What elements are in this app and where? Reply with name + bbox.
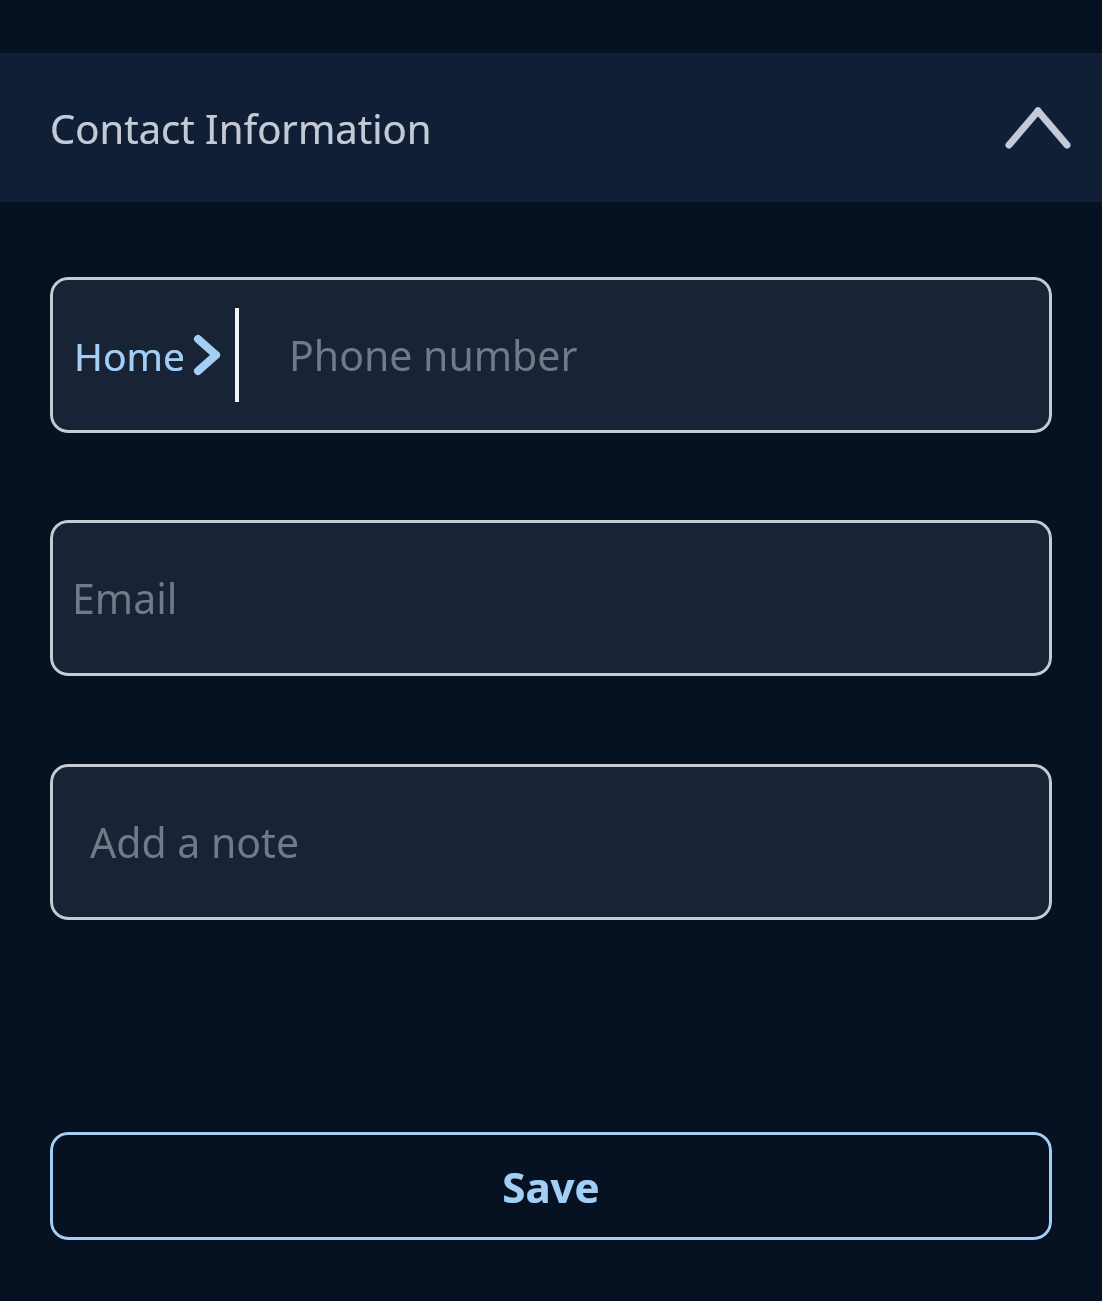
button[interactable]: Add a note [50,764,1052,920]
staticText: Home [74,329,185,382]
button[interactable]: Home [50,277,235,433]
button[interactable]: Contact Information [0,53,1102,202]
button[interactable]: Home [50,277,1052,433]
staticText: Contact Information [50,101,432,155]
button[interactable]: Email [50,520,1052,676]
button[interactable]: Collapse section [1006,96,1070,160]
staticText: Email [72,570,178,626]
staticText: Add a note [90,814,300,870]
button[interactable]: Phone number [239,277,1052,433]
staticText: Phone number [289,327,578,383]
button[interactable]: Save [50,1132,1052,1240]
staticText: Save [502,1158,600,1215]
